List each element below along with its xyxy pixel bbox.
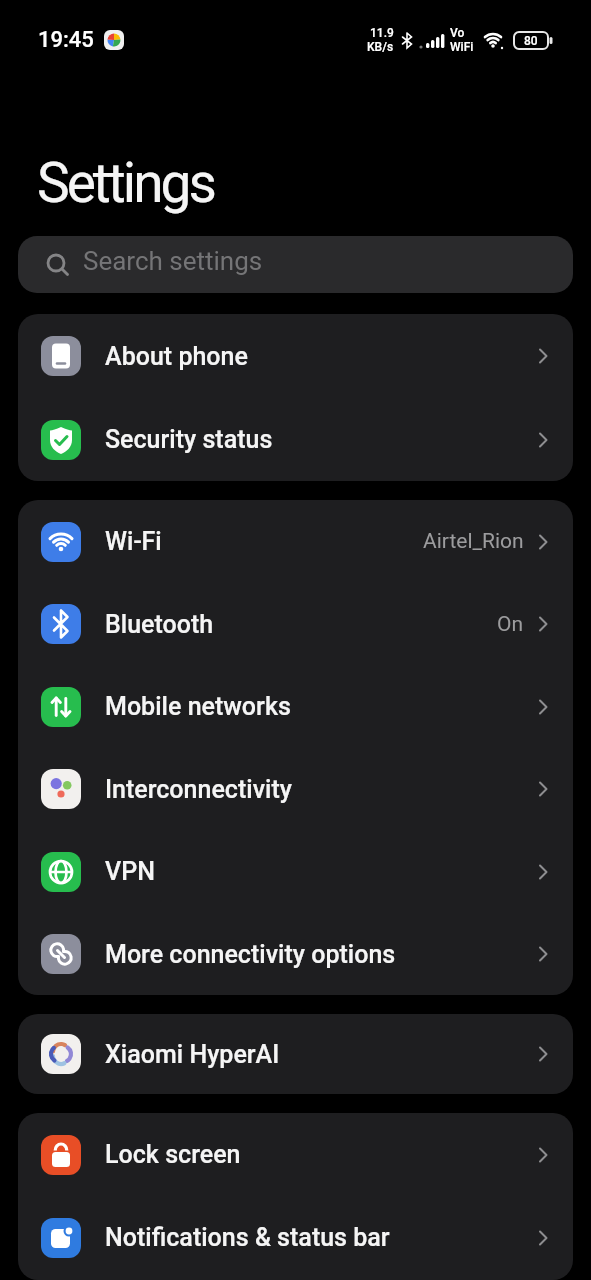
staticText: Bluetooth bbox=[105, 610, 214, 639]
staticText: Xiaomi HyperAI bbox=[105, 1040, 280, 1069]
button[interactable]: Notifications & status bar bbox=[18, 1196, 573, 1279]
staticText: KB/s bbox=[367, 40, 394, 54]
button[interactable]: Lock screen bbox=[18, 1113, 573, 1196]
button[interactable]: Security status bbox=[18, 398, 573, 481]
staticText: Airtel_Rion bbox=[423, 529, 524, 554]
staticText: Notifications & status bar bbox=[105, 1223, 390, 1252]
button[interactable]: Mobile networks bbox=[18, 665, 573, 748]
staticText: 11.9 bbox=[370, 26, 394, 40]
staticText: Security status bbox=[105, 425, 273, 454]
staticText: Lock screen bbox=[105, 1140, 241, 1169]
staticText: More connectivity options bbox=[105, 940, 396, 969]
staticText: On bbox=[497, 612, 524, 637]
button[interactable]: Wi-Fi bbox=[18, 500, 573, 583]
staticText: WiFi bbox=[450, 40, 474, 54]
staticText: 19:45 bbox=[38, 27, 94, 53]
staticText: 80 bbox=[524, 34, 538, 48]
staticText: Settings bbox=[37, 151, 214, 215]
staticText: Wi-Fi bbox=[105, 527, 162, 556]
staticText: Vo bbox=[450, 26, 465, 40]
staticText: Mobile networks bbox=[105, 692, 291, 721]
button[interactable]: Interconnectivity bbox=[18, 748, 573, 830]
staticText: VPN bbox=[105, 857, 155, 886]
button[interactable]: Xiaomi HyperAI bbox=[18, 1014, 573, 1094]
staticText: Search settings bbox=[83, 246, 263, 276]
button[interactable]: VPN bbox=[18, 830, 573, 913]
button[interactable]: Search settings bbox=[18, 236, 573, 293]
button[interactable]: About phone bbox=[18, 314, 573, 398]
button[interactable]: Bluetooth bbox=[18, 583, 573, 665]
staticText: Interconnectivity bbox=[105, 775, 292, 804]
button[interactable]: More connectivity options bbox=[18, 913, 573, 995]
staticText: About phone bbox=[105, 342, 248, 371]
